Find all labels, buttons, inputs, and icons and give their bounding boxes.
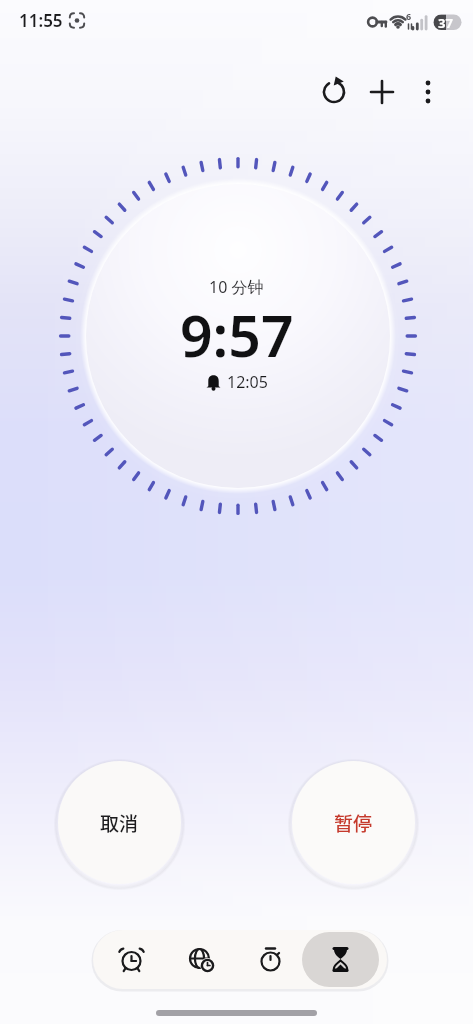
button[interactable]: 暂停 [292, 761, 415, 884]
button[interactable] [360, 70, 404, 114]
button[interactable] [167, 930, 236, 989]
staticText: 9:57 [180, 296, 294, 374]
staticText: 暂停 [334, 809, 373, 837]
button[interactable] [312, 70, 356, 114]
button[interactable] [236, 930, 305, 989]
staticText: 6 [406, 10, 412, 22]
staticText: 37 [438, 14, 453, 32]
button[interactable] [302, 932, 379, 987]
button[interactable] [406, 70, 450, 114]
button[interactable]: 取消 [58, 761, 181, 884]
staticText: 11:55 [19, 9, 63, 32]
staticText: 12:05 [227, 371, 268, 393]
staticText: 取消 [100, 809, 139, 837]
button[interactable] [97, 930, 166, 989]
staticText: 10 分钟 [209, 276, 264, 298]
